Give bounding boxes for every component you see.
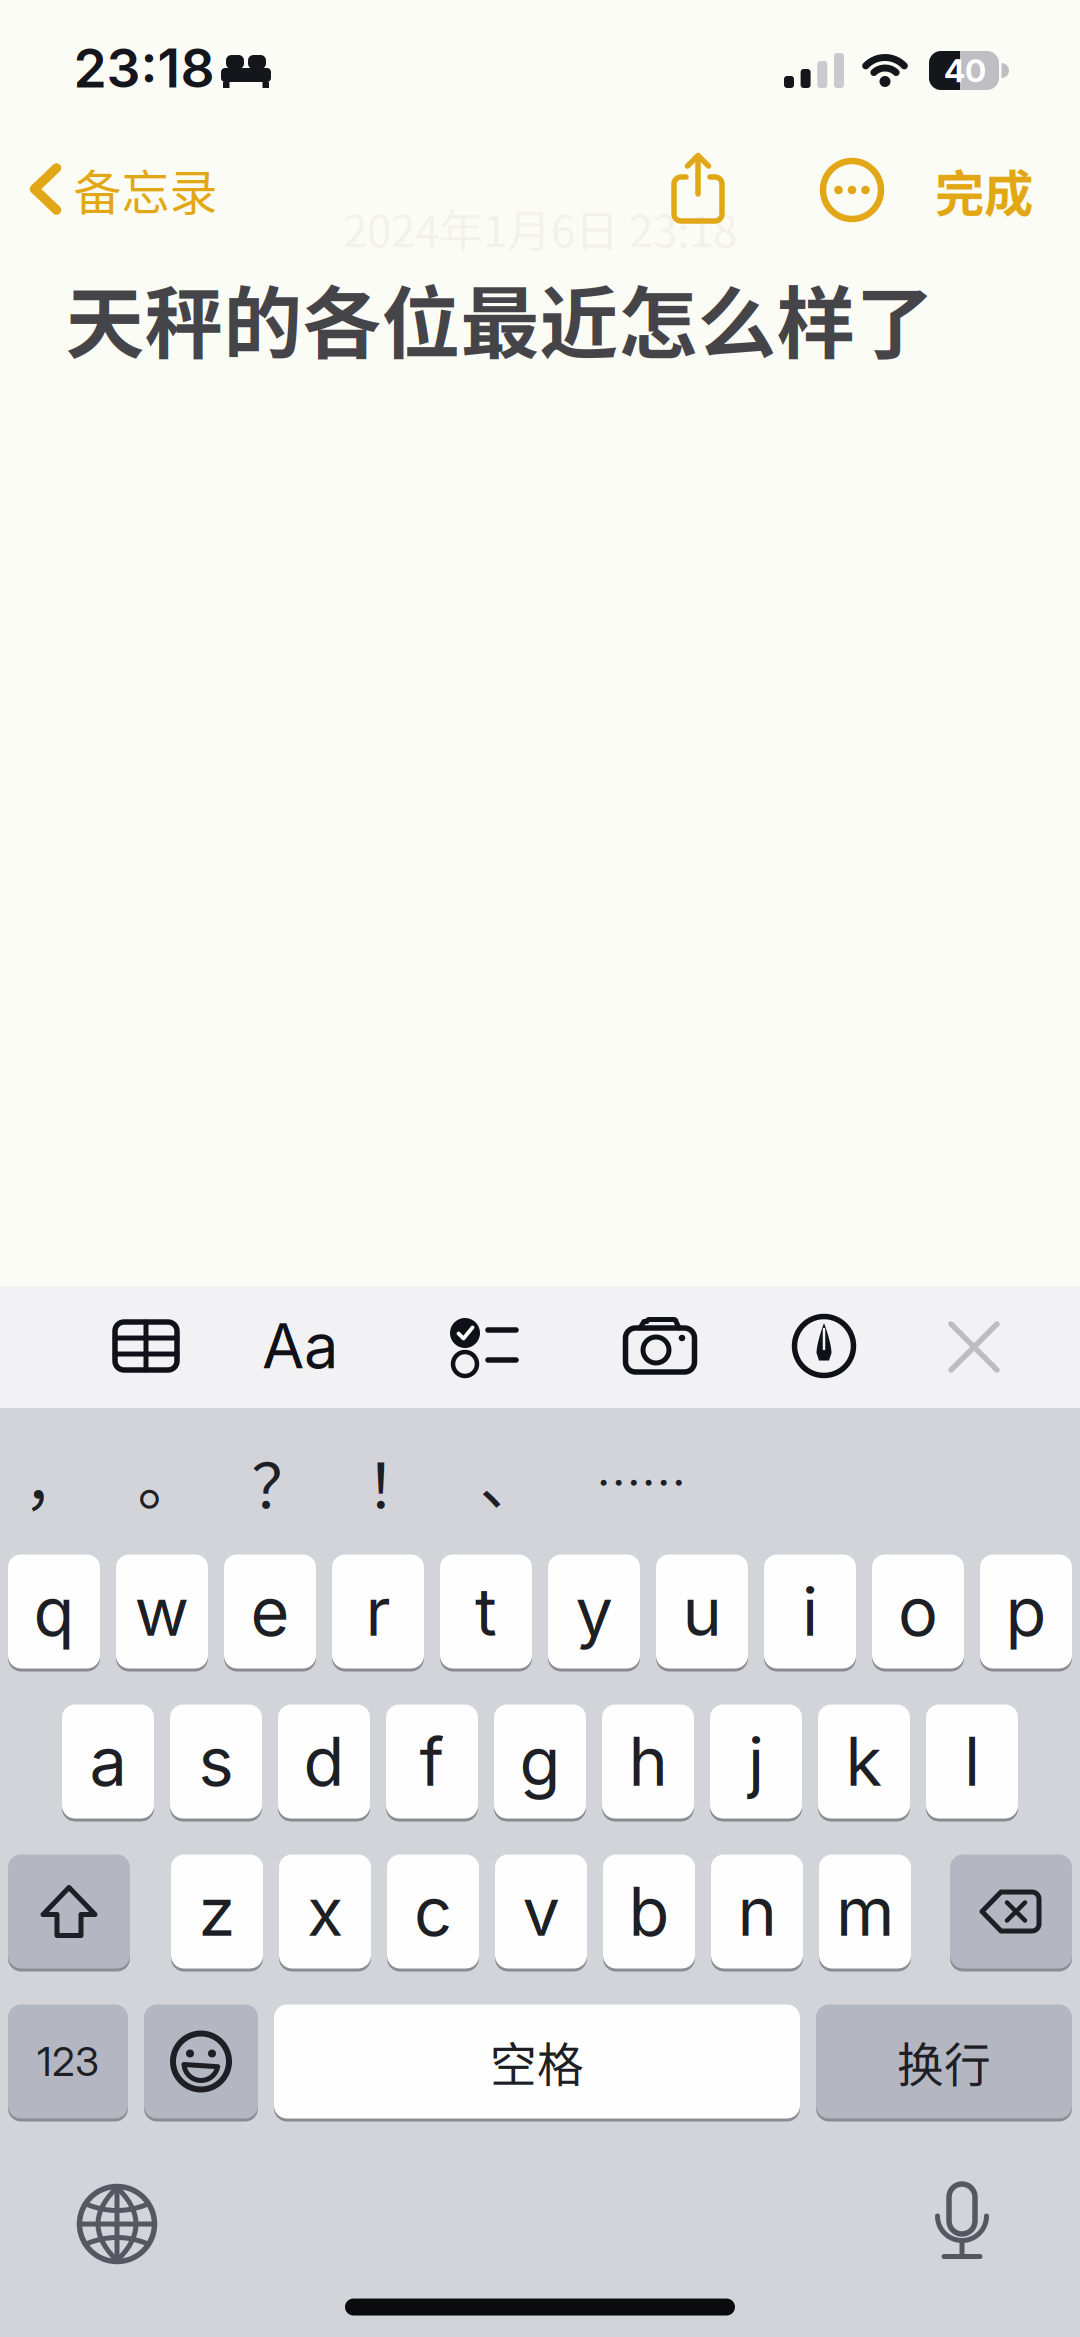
button[interactable]: b [603, 1853, 695, 1970]
staticText: a [89, 1721, 126, 1802]
button[interactable]: o [872, 1553, 964, 1670]
button[interactable]: More [821, 159, 883, 221]
button[interactable]: d [278, 1703, 370, 1820]
staticText: 空格 [490, 2028, 584, 2095]
staticText: k [845, 1721, 882, 1802]
button[interactable]: k [818, 1703, 910, 1820]
button[interactable]: Share [670, 153, 726, 223]
staticText: ？ [251, 1438, 312, 1526]
button[interactable]: a [62, 1703, 154, 1820]
button[interactable]: 、 [479, 1434, 540, 1522]
staticText: m [836, 1871, 894, 1952]
button[interactable]: 完成 [935, 154, 1033, 226]
button[interactable]: u [656, 1553, 748, 1670]
button[interactable]: ！ [365, 1438, 426, 1526]
button[interactable]: s [170, 1703, 262, 1820]
button[interactable]: 空格 [274, 2003, 800, 2120]
button[interactable]: h [602, 1703, 694, 1820]
button[interactable]: 备忘录 [28, 154, 217, 224]
button[interactable]: Dictate [935, 2182, 989, 2262]
button[interactable]: c [387, 1853, 479, 1970]
staticText: 23:18 [73, 36, 214, 100]
staticText: u [682, 1571, 721, 1652]
button[interactable]: l [926, 1703, 1018, 1820]
staticText: i [802, 1571, 818, 1652]
button[interactable]: t [440, 1553, 532, 1670]
button[interactable]: Delete [950, 1853, 1072, 1970]
staticText: r [365, 1571, 390, 1652]
staticText: v [522, 1871, 559, 1952]
button[interactable]: Markup [793, 1315, 855, 1377]
staticText: s [198, 1721, 233, 1802]
button[interactable]: Dismiss keyboard [949, 1322, 999, 1372]
staticText: 、 [479, 1434, 540, 1522]
button[interactable]: n [711, 1853, 803, 1970]
button[interactable]: ？ [251, 1438, 312, 1526]
button[interactable]: f [386, 1703, 478, 1820]
button[interactable]: Insert table [112, 1319, 180, 1373]
staticText: 完成 [935, 154, 1033, 226]
staticText: q [33, 1571, 74, 1652]
staticText: b [628, 1871, 669, 1952]
button[interactable]: r [332, 1553, 424, 1670]
button[interactable]: g [494, 1703, 586, 1820]
staticText: 2024年1月6日 23:18 [343, 196, 737, 260]
button[interactable]: Shift [8, 1853, 130, 1970]
staticText: 备忘录 [73, 154, 217, 224]
staticText: f [419, 1721, 444, 1802]
staticText: 换行 [897, 2028, 991, 2095]
button[interactable]: v [495, 1853, 587, 1970]
staticText: h [628, 1721, 667, 1802]
staticText: o [898, 1571, 938, 1652]
button[interactable]: ， [23, 1434, 84, 1522]
button[interactable]: Checklist [450, 1318, 518, 1374]
button[interactable]: w [116, 1553, 208, 1670]
button[interactable]: m [819, 1853, 911, 1970]
staticText: t [475, 1571, 497, 1652]
staticText: ， [23, 1434, 84, 1522]
button[interactable]: Insert photo [623, 1317, 697, 1375]
button[interactable]: z [171, 1853, 263, 1970]
staticText: Aa [262, 1309, 338, 1383]
staticText: n [737, 1871, 776, 1952]
button[interactable]: y [548, 1553, 640, 1670]
staticText: 天秤的各位最近怎么样了 [65, 261, 934, 375]
staticText: y [575, 1571, 612, 1652]
button[interactable]: Emoji [144, 2003, 258, 2120]
staticText: x [307, 1871, 343, 1952]
button[interactable]: 换行 [816, 2003, 1072, 2120]
staticText: …… [596, 1448, 686, 1514]
staticText: e [250, 1571, 289, 1652]
staticText: c [414, 1871, 452, 1952]
button[interactable]: i [764, 1553, 856, 1670]
button[interactable]: j [710, 1703, 802, 1820]
staticText: ！ [365, 1438, 426, 1526]
staticText: 40 [944, 51, 986, 90]
button[interactable]: e [224, 1553, 316, 1670]
button[interactable]: q [8, 1553, 100, 1670]
staticText: l [964, 1721, 980, 1802]
staticText: p [1005, 1571, 1046, 1652]
button[interactable]: Next keyboard [78, 2185, 156, 2263]
button[interactable]: p [980, 1553, 1072, 1670]
button[interactable]: 。 [137, 1434, 198, 1522]
staticText: 。 [137, 1434, 198, 1522]
staticText: j [748, 1721, 764, 1802]
staticText: w [134, 1571, 189, 1652]
button[interactable]: …… [596, 1448, 686, 1514]
button[interactable]: 123 [8, 2003, 128, 2120]
button[interactable]: x [279, 1853, 371, 1970]
staticText: z [198, 1871, 235, 1952]
button[interactable]: Format [262, 1309, 338, 1383]
staticText: 123 [37, 2037, 99, 2086]
staticText: g [519, 1721, 560, 1802]
staticText: d [303, 1721, 344, 1802]
